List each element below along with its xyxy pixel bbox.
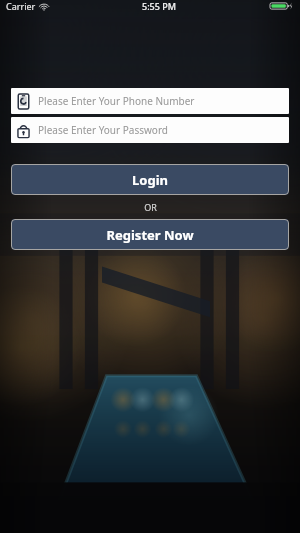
- staticText: Please Enter Your Phone Number: [38, 94, 195, 108]
- button[interactable]: Register Now: [11, 219, 289, 250]
- staticText: OR: [144, 201, 157, 213]
- button[interactable]: Please Enter Your Password: [11, 117, 289, 143]
- button[interactable]: Login: [11, 164, 289, 195]
- staticText: Register Now: [106, 226, 194, 244]
- staticText: Please Enter Your Password: [38, 123, 168, 137]
- staticText: 5:55 PM: [142, 0, 176, 12]
- button[interactable]: Please Enter Your Phone Number: [11, 88, 289, 114]
- staticText: Carrier: [6, 0, 36, 12]
- staticText: Login: [132, 171, 168, 189]
